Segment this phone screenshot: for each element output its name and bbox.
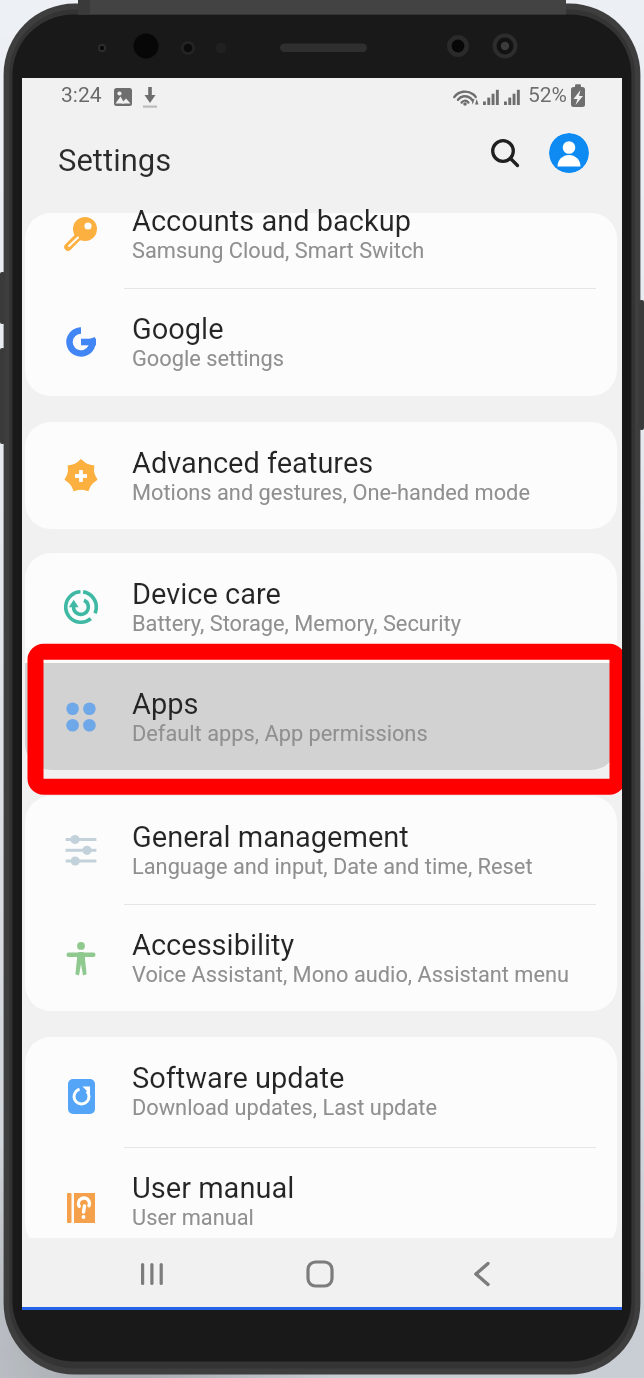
staticText: Motions and gestures, One-handed mode bbox=[132, 480, 530, 506]
staticText: User manual bbox=[132, 1171, 295, 1205]
staticText: 52% bbox=[528, 83, 567, 108]
staticText: Device care bbox=[132, 577, 281, 611]
button[interactable]: Search bbox=[483, 131, 527, 175]
staticText: Software update bbox=[132, 1061, 345, 1095]
button[interactable]: General management bbox=[22, 796, 622, 904]
button[interactable]: Google bbox=[22, 288, 622, 397]
staticText: Language and input, Date and time, Reset bbox=[132, 854, 533, 880]
staticText: Google settings bbox=[132, 346, 285, 372]
button[interactable]: Recents bbox=[102, 1238, 202, 1310]
staticText: Samsung Cloud, Smart Switch bbox=[132, 238, 425, 264]
staticText: User manual bbox=[132, 1205, 254, 1231]
staticText: General management bbox=[132, 820, 409, 854]
staticText: 3:24 bbox=[61, 83, 102, 108]
button[interactable]: User manual bbox=[22, 1147, 622, 1238]
staticText: Accounts and backup bbox=[132, 209, 412, 238]
button[interactable]: Account bbox=[549, 133, 589, 173]
staticText: Download updates, Last update bbox=[132, 1095, 437, 1121]
staticText: Default apps, App permissions bbox=[132, 721, 428, 747]
staticText: Accessibility bbox=[132, 928, 295, 962]
button[interactable]: Home bbox=[270, 1238, 370, 1310]
button[interactable]: Back bbox=[432, 1238, 532, 1310]
button[interactable]: Device care bbox=[22, 553, 622, 663]
staticText: Apps bbox=[132, 687, 199, 721]
staticText: Google bbox=[132, 312, 224, 346]
button[interactable]: Accessibility bbox=[22, 904, 622, 1011]
staticText: Advanced features bbox=[132, 446, 374, 480]
button[interactable]: Apps bbox=[22, 663, 622, 770]
staticText: Battery, Storage, Memory, Security bbox=[132, 611, 461, 637]
staticText: Settings bbox=[58, 142, 172, 178]
staticText: Voice Assistant, Mono audio, Assistant m… bbox=[132, 962, 570, 988]
button[interactable]: Accounts and backup bbox=[22, 209, 622, 288]
button[interactable]: Advanced features bbox=[22, 422, 622, 529]
button[interactable]: Software update bbox=[22, 1037, 622, 1147]
